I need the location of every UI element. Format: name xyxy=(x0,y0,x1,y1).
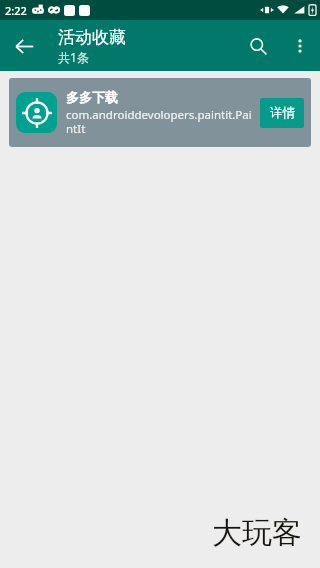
staticText: com.androiddevolopers.paintit.PaintIt xyxy=(66,107,254,136)
button[interactable]: Back xyxy=(0,22,48,70)
button[interactable]: More options xyxy=(280,26,320,66)
button[interactable]: Search xyxy=(236,24,280,68)
staticText: 多多下载 xyxy=(66,89,118,105)
staticText: 活动收藏 xyxy=(58,27,126,48)
staticText: 大玩客 xyxy=(212,514,302,552)
staticText: 2:22 xyxy=(5,3,27,18)
staticText: 详情 xyxy=(270,105,295,121)
button[interactable]: 详情 xyxy=(260,98,304,128)
staticText: 共1条 xyxy=(58,49,89,65)
button[interactable]: 多多下载 xyxy=(9,78,311,147)
